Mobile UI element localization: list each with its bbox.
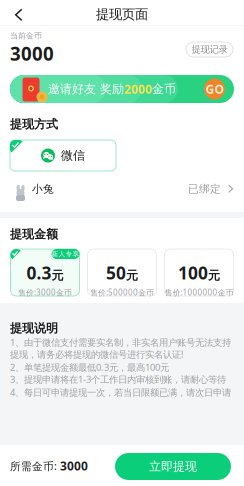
button[interactable]: 提现记录: [186, 42, 233, 57]
staticText: 微信: [61, 148, 85, 163]
staticText: 提现金额: [10, 227, 58, 242]
staticText: 元: [208, 268, 220, 283]
button[interactable]: 小兔: [0, 178, 244, 200]
button[interactable]: 50: [87, 249, 156, 296]
staticText: 售价:1000000金币: [164, 287, 233, 298]
staticText: 售价:3000金币: [18, 287, 72, 298]
button[interactable]: 微信: [10, 140, 116, 171]
staticText: 已绑定: [188, 182, 221, 195]
staticText: 邀请好友 奖励: [48, 82, 124, 96]
staticText: 提现，请务必将提现的微信号进行实名认证!: [10, 348, 184, 360]
staticText: 提现页面: [96, 6, 148, 22]
staticText: 3000: [10, 41, 54, 66]
staticText: 3、提现申请将在1-3个工作日内审核到账，请耐心等待: [10, 373, 226, 385]
staticText: 小兔: [32, 182, 54, 195]
button[interactable]: 立即提现: [115, 453, 231, 480]
staticText: 3000: [60, 458, 88, 474]
staticText: 1、由于微信支付需要实名制，非实名用户账号无法支持: [10, 336, 231, 348]
staticText: GO: [205, 81, 223, 97]
staticText: 新人专享: [51, 250, 79, 258]
staticText: 2、单笔提现金额最低0.3元，最高100元: [10, 361, 169, 373]
button[interactable]: 0.3: [10, 249, 79, 296]
button[interactable]: Back: [8, 6, 30, 24]
staticText: 50: [106, 261, 126, 284]
staticText: 当前金币: [10, 31, 42, 41]
staticText: 元: [51, 268, 63, 283]
staticText: 提现方式: [10, 117, 58, 132]
staticText: 提现记录: [191, 44, 227, 55]
staticText: 金币: [152, 82, 176, 96]
button[interactable]: 邀请好友 奖励: [10, 75, 234, 103]
staticText: 0.3: [26, 261, 51, 284]
staticText: 元: [126, 268, 138, 283]
staticText: 100: [178, 261, 208, 284]
staticText: 售价:500000金币: [90, 287, 154, 298]
staticText: 立即提现: [149, 459, 197, 474]
staticText: 4、每日可申请提现一次，若当日限额已满，请次日申请: [10, 386, 231, 398]
staticText: 所需金币:: [10, 459, 60, 473]
button[interactable]: 100: [164, 249, 233, 296]
staticText: 提现说明: [10, 321, 58, 336]
staticText: 2000: [124, 81, 152, 97]
